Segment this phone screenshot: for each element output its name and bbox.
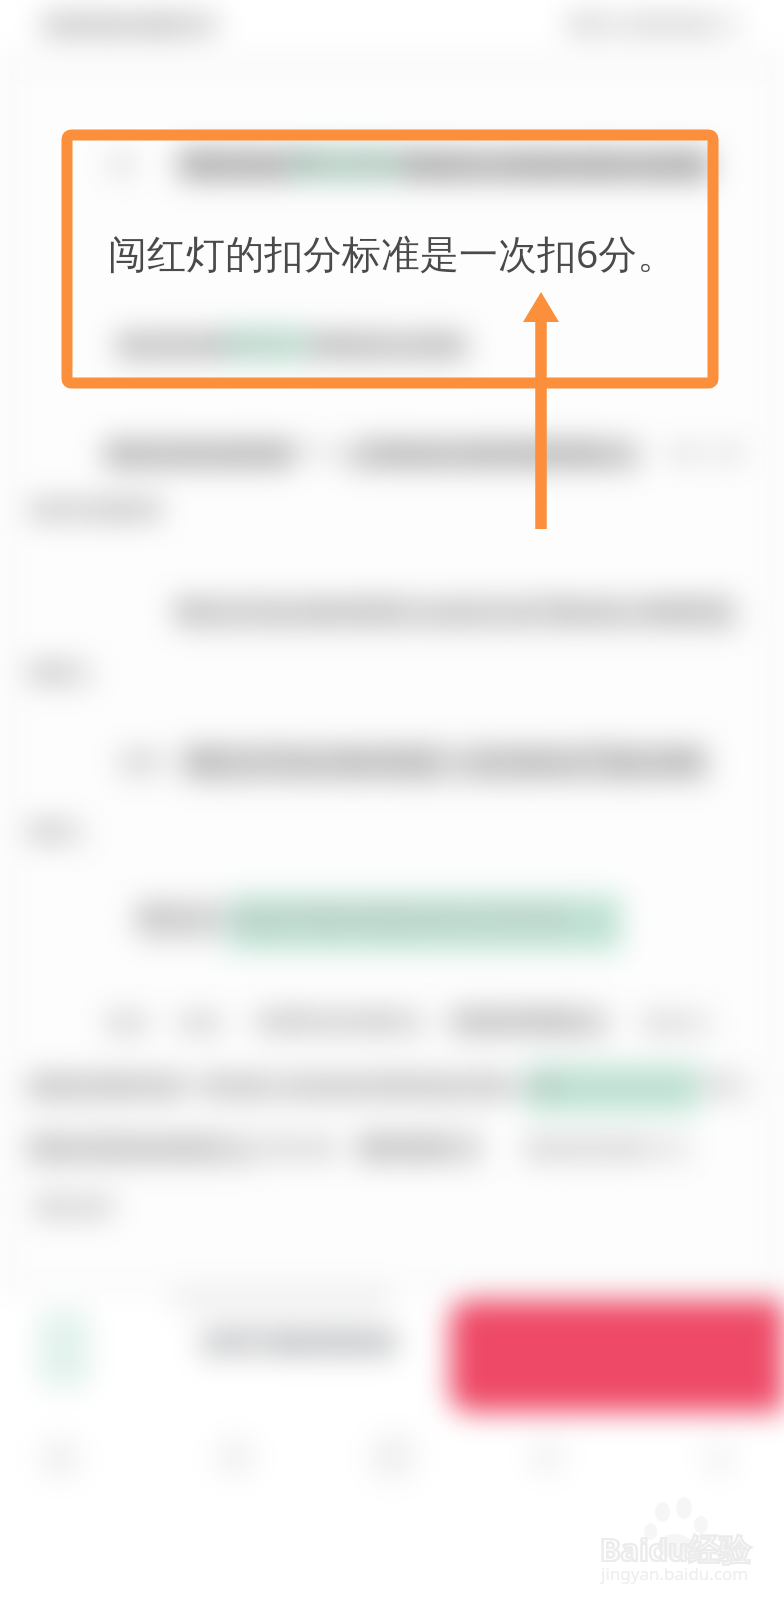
staticText: 闯红灯的扣分标准是一次扣6分。: [108, 226, 677, 279]
button[interactable]: 回答：闯红灯扣分标准是一次扣6分罚款200: [16, 730, 756, 810]
button[interactable]: 展开全部回答: [16, 1180, 136, 1232]
staticText: 闯红灯一次扣6分是什么意思: [406, 145, 708, 178]
staticText: 什么: [294, 436, 342, 466]
button[interactable]: 发布: [352, 1424, 436, 1486]
staticText: 展开: [26, 816, 70, 844]
staticText: 道路交通信号灯通行的一次记6分同时处以罚款200: [26, 1068, 561, 1101]
button[interactable]: 立即下载: [440, 1294, 784, 1418]
staticText: jingyan.baidu.com: [601, 1562, 749, 1585]
button[interactable]: 相关问题解答: [20, 486, 200, 536]
button[interactable]: 登录 / 注册: [550, 0, 760, 56]
staticText: 百度经验 搜索引擎: [40, 9, 222, 39]
button[interactable]: 展开全文: [16, 806, 126, 862]
staticText: 展开全部: [34, 1192, 118, 1218]
staticText: 相关问题解答: [28, 494, 166, 523]
staticText: 回答: [26, 656, 74, 686]
staticText: Baidu经验: [600, 1528, 751, 1570]
staticText: 机动车驾驶人: [450, 1004, 594, 1034]
staticText: 闯红灯的扣分标准: [26, 1130, 218, 1160]
staticText: 闯红灯扣分标准是: [104, 436, 296, 466]
staticText: 全部: [116, 744, 164, 774]
button[interactable]: 相关问题：机动车驾驶证扣分周期: [90, 316, 720, 376]
staticText: 罚款多少钱的最新规定: [370, 436, 610, 466]
staticText: 周期是怎么算的: [306, 328, 467, 357]
staticText: 元；: [702, 1068, 750, 1098]
staticText: 证扣分: [222, 328, 291, 357]
staticText: 闯红灯扣几分: [178, 145, 322, 175]
button[interactable]: 百度经验 首页: [20, 0, 240, 56]
staticText: 闯红灯扣分标准是什么扣几分罚款多少钱呢是: [172, 592, 732, 627]
staticText: 新交规规定: [292, 145, 412, 175]
button[interactable]: 应用图标: [24, 1296, 104, 1400]
button[interactable]: 消息: [510, 1430, 586, 1486]
staticText: 闯红灯扣分标准是一次扣6分罚款200: [182, 738, 704, 782]
staticText: 交通安全法规定: [254, 1006, 408, 1034]
staticText: 闯红灯: [134, 896, 224, 934]
staticText: 的处罚标准是扣6分罚200: [228, 896, 567, 937]
staticText: 扣6分的: [356, 1128, 446, 1162]
button[interactable]: 相关问题：闯红灯扣分标准是什么: [90, 424, 720, 488]
button[interactable]: 问题：闯红灯扣分标准是什么: [150, 580, 770, 650]
staticText: 机动车驾驶: [116, 328, 231, 357]
staticText: 立即下载查看更多: [200, 1326, 400, 1357]
button[interactable]: 相关问题：闯红灯扣几分: [90, 136, 720, 206]
